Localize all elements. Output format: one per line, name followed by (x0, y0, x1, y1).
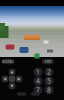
button[interactable]: Left (2, 76, 8, 82)
button[interactable] (31, 92, 40, 96)
button[interactable] (17, 92, 26, 96)
button[interactable]: 5 (44, 76, 53, 85)
button[interactable]: 7 (33, 85, 42, 94)
staticText: 4 (36, 77, 40, 85)
staticText: MENU (2, 59, 14, 64)
staticText: 2 (47, 68, 51, 76)
button[interactable]: MENU (2, 59, 14, 64)
staticText: 5 (47, 77, 51, 85)
button[interactable]: EXIT (42, 59, 54, 64)
button[interactable]: Up (9, 69, 15, 75)
button[interactable]: 4 (33, 76, 42, 85)
staticText: 7 (36, 86, 40, 94)
button[interactable]: OK (9, 76, 15, 82)
button[interactable]: Right (16, 76, 22, 82)
staticText: EXIT (44, 59, 51, 64)
staticText: 1 (36, 68, 40, 76)
button[interactable]: 2 (44, 67, 53, 76)
button[interactable]: Down (9, 83, 15, 89)
button[interactable]: 8 (44, 85, 53, 94)
staticText: 8 (47, 86, 51, 94)
button[interactable]: 1 (33, 67, 42, 76)
